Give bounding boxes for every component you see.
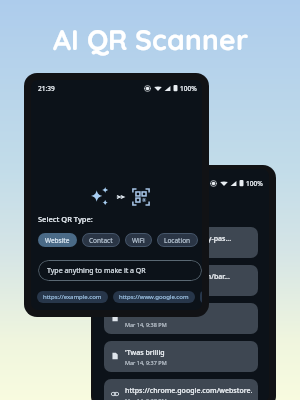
button[interactable]: https://chrome.google.com/webstore... <box>104 379 258 400</box>
button[interactable]: 'Twas brillig <box>104 341 258 372</box>
staticText: Mar 14, 9:38 PM <box>125 321 167 328</box>
staticText: Location <box>164 236 191 245</box>
button[interactable]: https://www.amazon.com/bar... <box>104 265 258 296</box>
staticText: Mar 14, 9:38 PM <box>125 245 167 252</box>
staticText: https://www.google.com <box>119 293 189 301</box>
staticText: 100% <box>180 84 197 93</box>
staticText: Mar 14, 9:37 PM <box>125 359 167 366</box>
button[interactable]: WiFi <box>125 233 152 247</box>
staticText: https://chrome.google.com/webstore... <box>125 386 253 396</box>
button[interactable]: Type anything to make it a QR <box>38 260 202 281</box>
button[interactable]: https://gi <box>200 291 202 303</box>
button[interactable]: https://www.google.com <box>113 291 195 303</box>
button[interactable]: WIFI:S:MyNet;T:WPA;P:my-pas... <box>104 227 258 258</box>
button[interactable]: Hello world <box>104 303 258 334</box>
staticText: Select QR Type: <box>38 214 93 224</box>
staticText: 'Twas brillig <box>125 348 165 358</box>
staticText: Type anything to make it a QR <box>47 266 146 276</box>
staticText: WiFi <box>132 236 145 245</box>
staticText: 21:39 <box>38 84 55 93</box>
staticText: Website <box>45 236 70 245</box>
button[interactable]: Contact <box>82 233 120 247</box>
staticText: https://example.com <box>43 293 102 301</box>
button[interactable]: Website <box>38 233 77 247</box>
staticText: Contact <box>89 236 113 245</box>
staticText: WIFI:S:MyNet;T:WPA;P:my-pas... <box>125 234 232 244</box>
button[interactable]: https://example.com <box>37 291 108 303</box>
staticText: Hello world <box>125 310 164 320</box>
staticText: https://www.amazon.com/bar... <box>125 272 230 282</box>
staticText: 100% <box>246 179 263 188</box>
staticText: Mar 14, 9:37 PM <box>125 397 167 400</box>
button[interactable]: Location <box>157 233 198 247</box>
